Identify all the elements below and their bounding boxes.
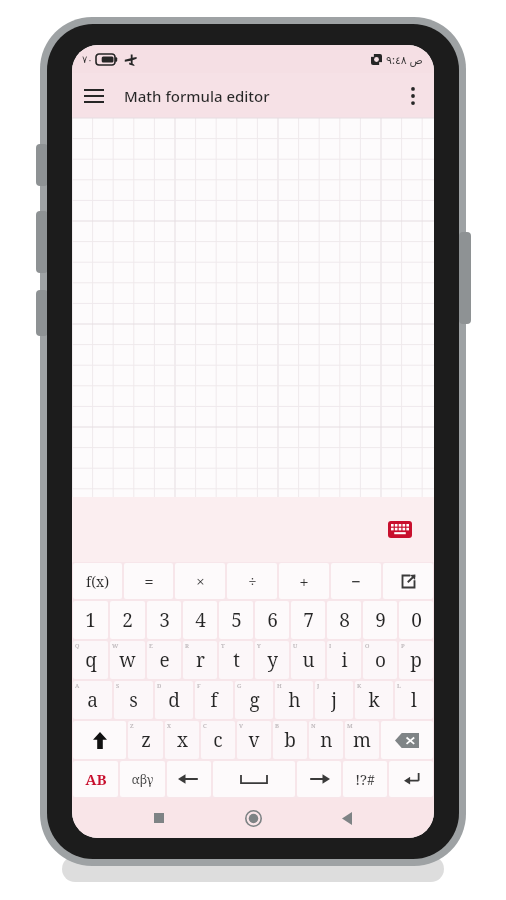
button[interactable]: 8: [327, 601, 361, 639]
staticText: P: [401, 642, 405, 650]
button[interactable]: Enter: [389, 761, 433, 797]
staticText: 6: [267, 607, 278, 633]
button[interactable]: J: [315, 681, 353, 719]
staticText: ٧٠: [82, 54, 93, 66]
staticText: l: [411, 687, 417, 713]
button[interactable]: 3: [147, 601, 181, 639]
button[interactable]: V: [237, 721, 271, 759]
button[interactable]: P: [399, 641, 433, 679]
button[interactable]: Plus: [279, 563, 329, 599]
button[interactable]: Back: [327, 798, 367, 838]
staticText: αβγ: [131, 770, 154, 788]
button[interactable]: 4: [183, 601, 217, 639]
button[interactable]: O: [363, 641, 397, 679]
button[interactable]: K: [355, 681, 393, 719]
staticText: K: [357, 682, 362, 690]
button[interactable]: H: [275, 681, 313, 719]
button[interactable]: Divide: [227, 563, 277, 599]
button[interactable]: R: [183, 641, 217, 679]
staticText: o: [375, 647, 386, 673]
staticText: ص ٩:٤٨: [386, 52, 423, 67]
staticText: ×: [196, 571, 205, 591]
staticText: F: [197, 682, 201, 690]
button[interactable]: Minus: [331, 563, 381, 599]
staticText: N: [311, 722, 316, 730]
button[interactable]: E: [147, 641, 181, 679]
button[interactable]: Equals: [124, 563, 173, 599]
staticText: j: [331, 687, 337, 713]
staticText: e: [159, 647, 170, 673]
staticText: AB: [85, 769, 107, 789]
button[interactable]: 6: [255, 601, 289, 639]
staticText: z: [141, 727, 151, 753]
button[interactable]: B: [273, 721, 307, 759]
button[interactable]: Greek letters: [120, 761, 165, 797]
button[interactable]: 1: [73, 601, 108, 639]
button[interactable]: Toggle keyboard: [388, 521, 412, 538]
button[interactable]: Move left: [167, 761, 211, 797]
button[interactable]: Functions: [73, 563, 122, 599]
staticText: i: [341, 647, 348, 673]
button[interactable]: L: [395, 681, 433, 719]
staticText: M: [347, 722, 353, 730]
button[interactable]: Recent apps: [139, 798, 179, 838]
button[interactable]: S: [114, 681, 153, 719]
button[interactable]: C: [201, 721, 235, 759]
staticText: u: [302, 647, 315, 673]
button[interactable]: M: [345, 721, 379, 759]
staticText: I: [329, 642, 332, 650]
staticText: w: [119, 647, 136, 673]
button[interactable]: Export formula: [383, 563, 433, 599]
button[interactable]: Move right: [297, 761, 341, 797]
button[interactable]: More options: [392, 75, 434, 117]
button[interactable]: 0: [399, 601, 433, 639]
button[interactable]: Y: [255, 641, 289, 679]
staticText: Math formula editor: [124, 86, 270, 106]
staticText: B: [275, 722, 279, 730]
staticText: R: [185, 642, 189, 650]
button[interactable]: 2: [110, 601, 145, 639]
button[interactable]: W: [110, 641, 145, 679]
button[interactable]: Open navigation menu: [72, 74, 116, 118]
button[interactable]: Backspace: [381, 721, 433, 759]
button[interactable]: G: [235, 681, 273, 719]
staticText: J: [317, 682, 320, 690]
staticText: O: [365, 642, 370, 650]
staticText: f(x): [86, 572, 109, 591]
button[interactable]: I: [327, 641, 361, 679]
staticText: 8: [339, 607, 350, 633]
button[interactable]: Space: [213, 761, 295, 797]
staticText: 9: [375, 607, 386, 633]
staticText: −: [351, 570, 361, 593]
staticText: L: [397, 682, 401, 690]
button[interactable]: X: [165, 721, 199, 759]
staticText: t: [233, 647, 240, 673]
staticText: +: [299, 570, 309, 593]
button[interactable]: A: [73, 681, 112, 719]
staticText: 3: [159, 607, 170, 633]
button[interactable]: Symbols: [343, 761, 387, 797]
button[interactable]: D: [155, 681, 193, 719]
staticText: H: [277, 682, 282, 690]
staticText: 1: [85, 607, 96, 633]
button[interactable]: T: [219, 641, 253, 679]
staticText: A: [75, 682, 80, 690]
staticText: v: [248, 727, 260, 753]
button[interactable]: Multiply: [175, 563, 225, 599]
staticText: W: [112, 642, 119, 650]
staticText: s: [129, 687, 138, 713]
button[interactable]: F: [195, 681, 233, 719]
staticText: =: [144, 570, 154, 593]
button[interactable]: 9: [363, 601, 397, 639]
button[interactable]: 7: [291, 601, 325, 639]
button[interactable]: Q: [73, 641, 108, 679]
staticText: G: [237, 682, 242, 690]
button[interactable]: Shift: [73, 721, 126, 759]
button[interactable]: U: [291, 641, 325, 679]
button[interactable]: 5: [219, 601, 253, 639]
button[interactable]: N: [309, 721, 343, 759]
button[interactable]: Switch to letters: [73, 761, 118, 797]
button[interactable]: Z: [128, 721, 163, 759]
staticText: X: [167, 722, 171, 730]
button[interactable]: Home: [233, 798, 273, 838]
